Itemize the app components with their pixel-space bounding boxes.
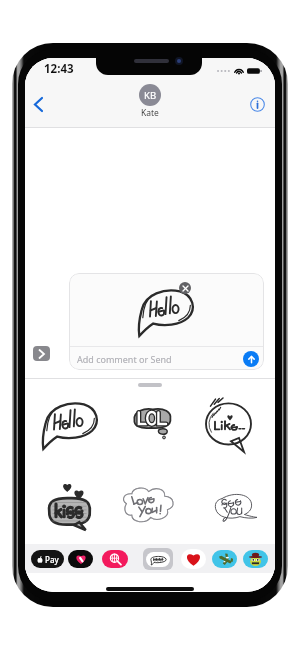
- button[interactable]: Hello sticker: [35, 398, 111, 452]
- button[interactable]: Love you sticker: [111, 478, 187, 532]
- staticText: Kate: [141, 107, 159, 119]
- button[interactable]: Apps: [33, 346, 50, 361]
- button[interactable]: KB: [139, 84, 161, 119]
- staticText: Pay: [45, 554, 59, 565]
- button[interactable]: Airplane sticker: [212, 550, 237, 568]
- staticText: 12:43: [44, 61, 74, 77]
- button[interactable]: Hearts: [181, 549, 206, 569]
- button[interactable]: Kiss sticker: [35, 478, 111, 532]
- button[interactable]: Apple Pay: [31, 550, 64, 568]
- staticText: KB: [144, 89, 157, 102]
- button[interactable]: Character sticker: [243, 550, 268, 568]
- button[interactable]: Search: [102, 550, 128, 568]
- button[interactable]: Back: [26, 92, 50, 116]
- staticText: Add comment or Send: [77, 353, 172, 365]
- button[interactable]: Like sticker: [187, 398, 263, 452]
- button[interactable]: See you sticker: [187, 478, 263, 532]
- button[interactable]: Remove sticker: [179, 282, 191, 294]
- button[interactable]: Send: [243, 351, 259, 367]
- button[interactable]: Info: [245, 92, 269, 116]
- button[interactable]: Stickers: [143, 548, 173, 570]
- button[interactable]: LOL sticker: [111, 398, 187, 452]
- button[interactable]: Digital Touch: [68, 550, 93, 568]
